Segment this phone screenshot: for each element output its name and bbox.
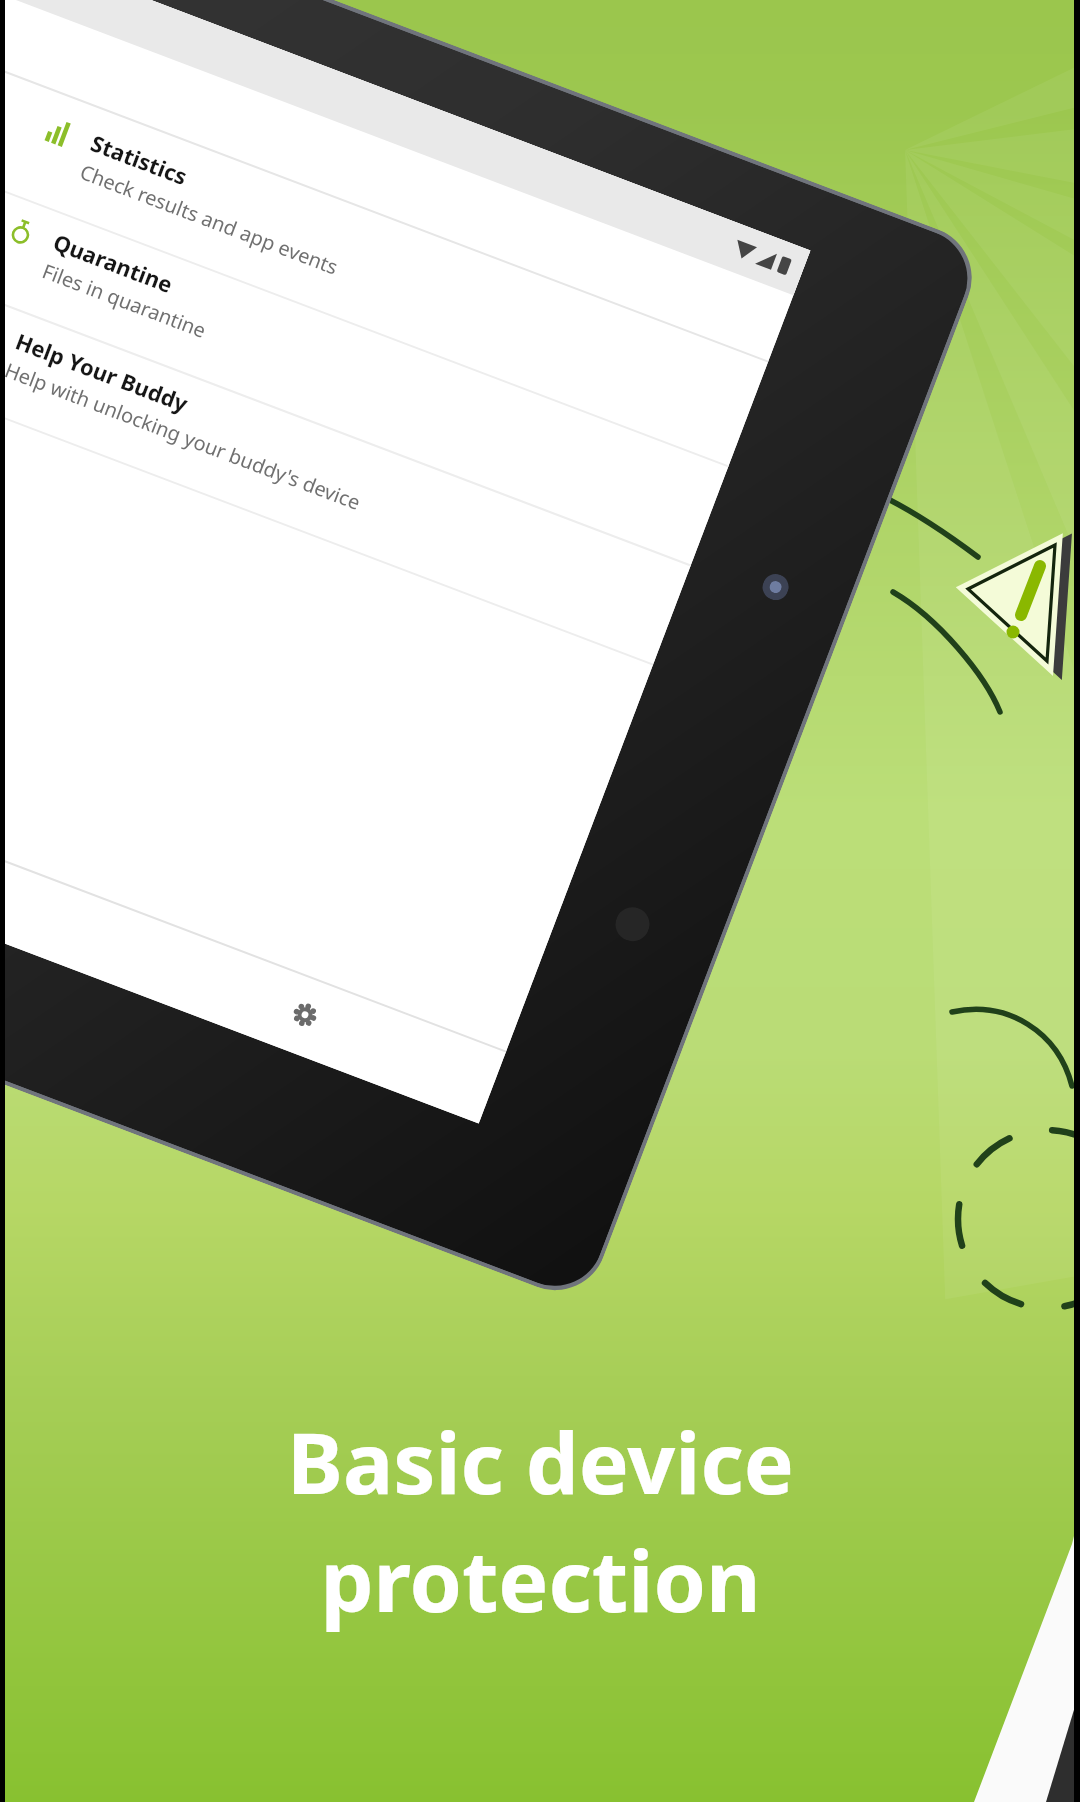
staticText: Statistics — [87, 127, 192, 191]
staticText: Files in quarantine — [39, 257, 210, 344]
staticText: protection — [320, 1522, 761, 1636]
button[interactable]: Settings — [284, 994, 326, 1035]
staticText: Check results and app events — [76, 158, 342, 281]
staticText: Help with unlocking your buddy's device — [1, 356, 365, 516]
staticText: Quarantine — [49, 226, 178, 299]
staticText: Help Your Buddy — [12, 325, 192, 418]
button[interactable]: Help Your Buddy — [0, 105, 690, 665]
button[interactable]: Quarantine — [0, 6, 728, 566]
button[interactable]: Statistics — [0, 0, 766, 467]
staticText: Basic device — [287, 1404, 794, 1518]
